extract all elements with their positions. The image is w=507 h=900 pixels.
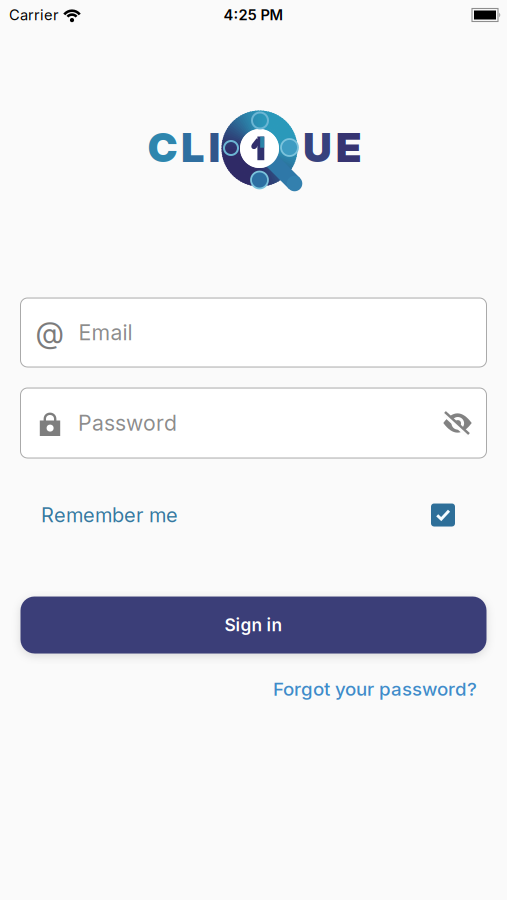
button[interactable]: Sign in — [0, 596, 507, 653]
staticText: Forgot your password? — [273, 678, 477, 700]
staticText: C — [148, 124, 177, 171]
button[interactable] — [431, 503, 455, 526]
staticText: Password — [78, 410, 177, 436]
button[interactable]: Password — [0, 388, 507, 458]
button[interactable]: Forgot your password? — [273, 678, 477, 700]
staticText: Sign in — [224, 615, 282, 635]
staticText: Carrier — [9, 6, 59, 24]
staticText: 4:25 PM — [223, 6, 283, 24]
staticText: L — [181, 124, 204, 171]
staticText: @ — [35, 315, 63, 350]
button[interactable]: Remember me — [41, 503, 178, 527]
staticText: U — [303, 124, 331, 171]
staticText: Remember me — [41, 503, 178, 527]
staticText: Email — [78, 320, 132, 345]
staticText: E — [336, 124, 361, 171]
button[interactable]: @ — [0, 298, 507, 367]
staticText: I — [209, 124, 220, 171]
